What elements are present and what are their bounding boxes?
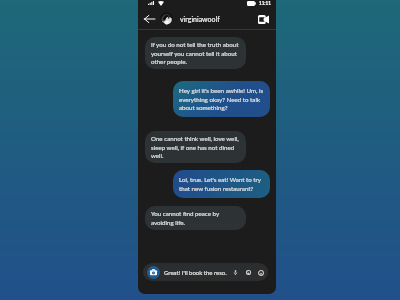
staticText: virginiawoolf [180,15,220,23]
staticText: Great! I'll book the reso. [164,269,227,276]
staticText: Hey girl it's been awhile! Um, is everyt… [179,87,264,111]
button[interactable]: Gallery [244,268,253,277]
staticText: 11:11 [259,0,271,6]
staticText: Lol, true. Let's eat! Want to try that n… [179,176,264,192]
staticText: If you do not tell the truth about yours… [151,41,240,65]
staticText: One cannot think well, love well, sleep … [151,135,240,159]
button[interactable]: Camera [147,266,160,279]
staticText: You cannot find peace by avoiding life. [151,210,240,226]
button[interactable]: Video call [256,12,270,26]
button[interactable]: Stickers [256,268,265,277]
button[interactable]: You cannot find peace by avoiding life. [145,206,246,230]
button[interactable]: Back [143,12,156,25]
button[interactable]: Hey girl it's been awhile! Um, is everyt… [173,81,270,117]
button[interactable]: If you do not tell the truth about yours… [145,37,246,69]
button[interactable]: One cannot think well, love well, sleep … [145,131,246,163]
button[interactable]: Lol, true. Let's eat! Want to try that n… [173,170,270,198]
button[interactable]: Voice message [231,268,240,277]
